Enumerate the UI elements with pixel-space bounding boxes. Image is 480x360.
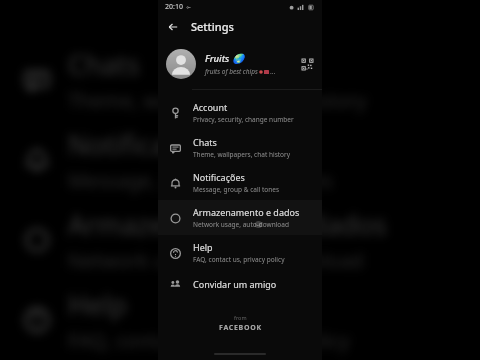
staticText: Notificações (68, 126, 224, 163)
staticText: ... (270, 67, 276, 76)
staticText: Network usage, auto-download (193, 220, 289, 229)
button[interactable]: Account (158, 95, 322, 130)
staticText: Help (68, 286, 127, 323)
button[interactable]: Notificações (158, 165, 322, 200)
button[interactable]: Chats (158, 130, 322, 165)
staticText: fruits of best chips (205, 67, 258, 76)
button[interactable]: Help (158, 235, 322, 270)
staticText: Notificações (193, 171, 245, 183)
staticText: Fruits 🌏 (205, 52, 244, 65)
staticText: Theme, wallpapers, chat history (68, 87, 367, 114)
staticText: Chats (193, 136, 217, 148)
button[interactable]: Armazenamento e dados (158, 200, 322, 235)
staticText: FAQ, contact us, privacy policy (68, 327, 350, 354)
staticText: Account (193, 101, 228, 113)
staticText: Armazenamento e dados (68, 206, 387, 243)
staticText: Help (193, 241, 213, 253)
staticText: Message, group & call tones (193, 185, 280, 194)
staticText: Convidar um amigo (193, 278, 277, 290)
staticText: Settings (191, 19, 234, 34)
button[interactable]: Convidar um amigo (158, 270, 322, 298)
staticText: Chats (68, 46, 140, 83)
staticText: Message, group & call tones (68, 167, 333, 194)
staticText: 20:10 (165, 2, 183, 12)
staticText: Theme, wallpapers, chat history (193, 150, 291, 159)
staticText: Privacy, security, change number (193, 115, 294, 124)
button[interactable]: QR code (298, 55, 316, 73)
staticText: Armazenamento e dados (193, 206, 300, 218)
staticText: Network usage, auto-download (68, 247, 364, 274)
button[interactable]: Fruits 🌏 (158, 45, 322, 83)
button[interactable]: Back (163, 17, 183, 37)
staticText: from (234, 314, 247, 321)
staticText: FAQ, contact us, privacy policy (193, 255, 285, 264)
staticText: FACEBOOK (219, 323, 262, 333)
